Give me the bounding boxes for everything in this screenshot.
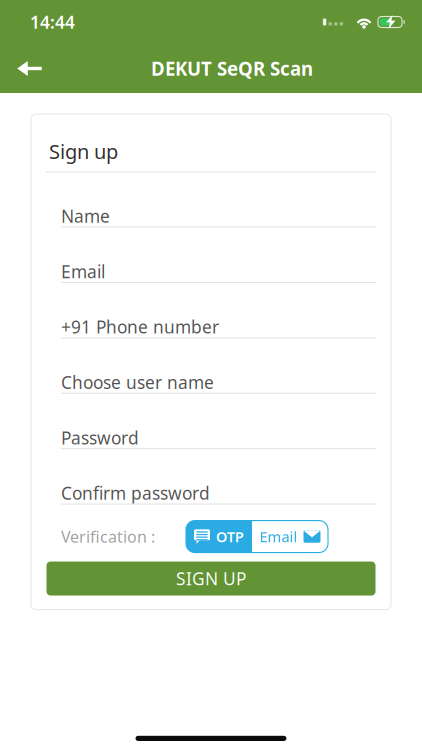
staticText: Verification : bbox=[61, 526, 155, 547]
button[interactable]: Back bbox=[5, 44, 54, 93]
button[interactable]: OTP bbox=[186, 521, 252, 553]
staticText: Name bbox=[61, 205, 110, 228]
staticText: Choose user name bbox=[61, 371, 214, 394]
staticText: DEKUT SeQR Scan bbox=[151, 56, 313, 81]
staticText: SIGN UP bbox=[176, 567, 246, 590]
staticText: OTP bbox=[216, 527, 244, 546]
button[interactable]: Email bbox=[252, 521, 328, 553]
button[interactable]: SIGN UP bbox=[46, 562, 375, 596]
staticText: Email bbox=[259, 527, 297, 546]
staticText: 14:44 bbox=[30, 10, 75, 33]
staticText: Confirm password bbox=[61, 482, 210, 505]
staticText: Password bbox=[61, 426, 139, 449]
staticText: +91 Phone number bbox=[61, 315, 219, 338]
staticText: Sign up bbox=[49, 138, 118, 165]
staticText: Email bbox=[61, 260, 105, 283]
